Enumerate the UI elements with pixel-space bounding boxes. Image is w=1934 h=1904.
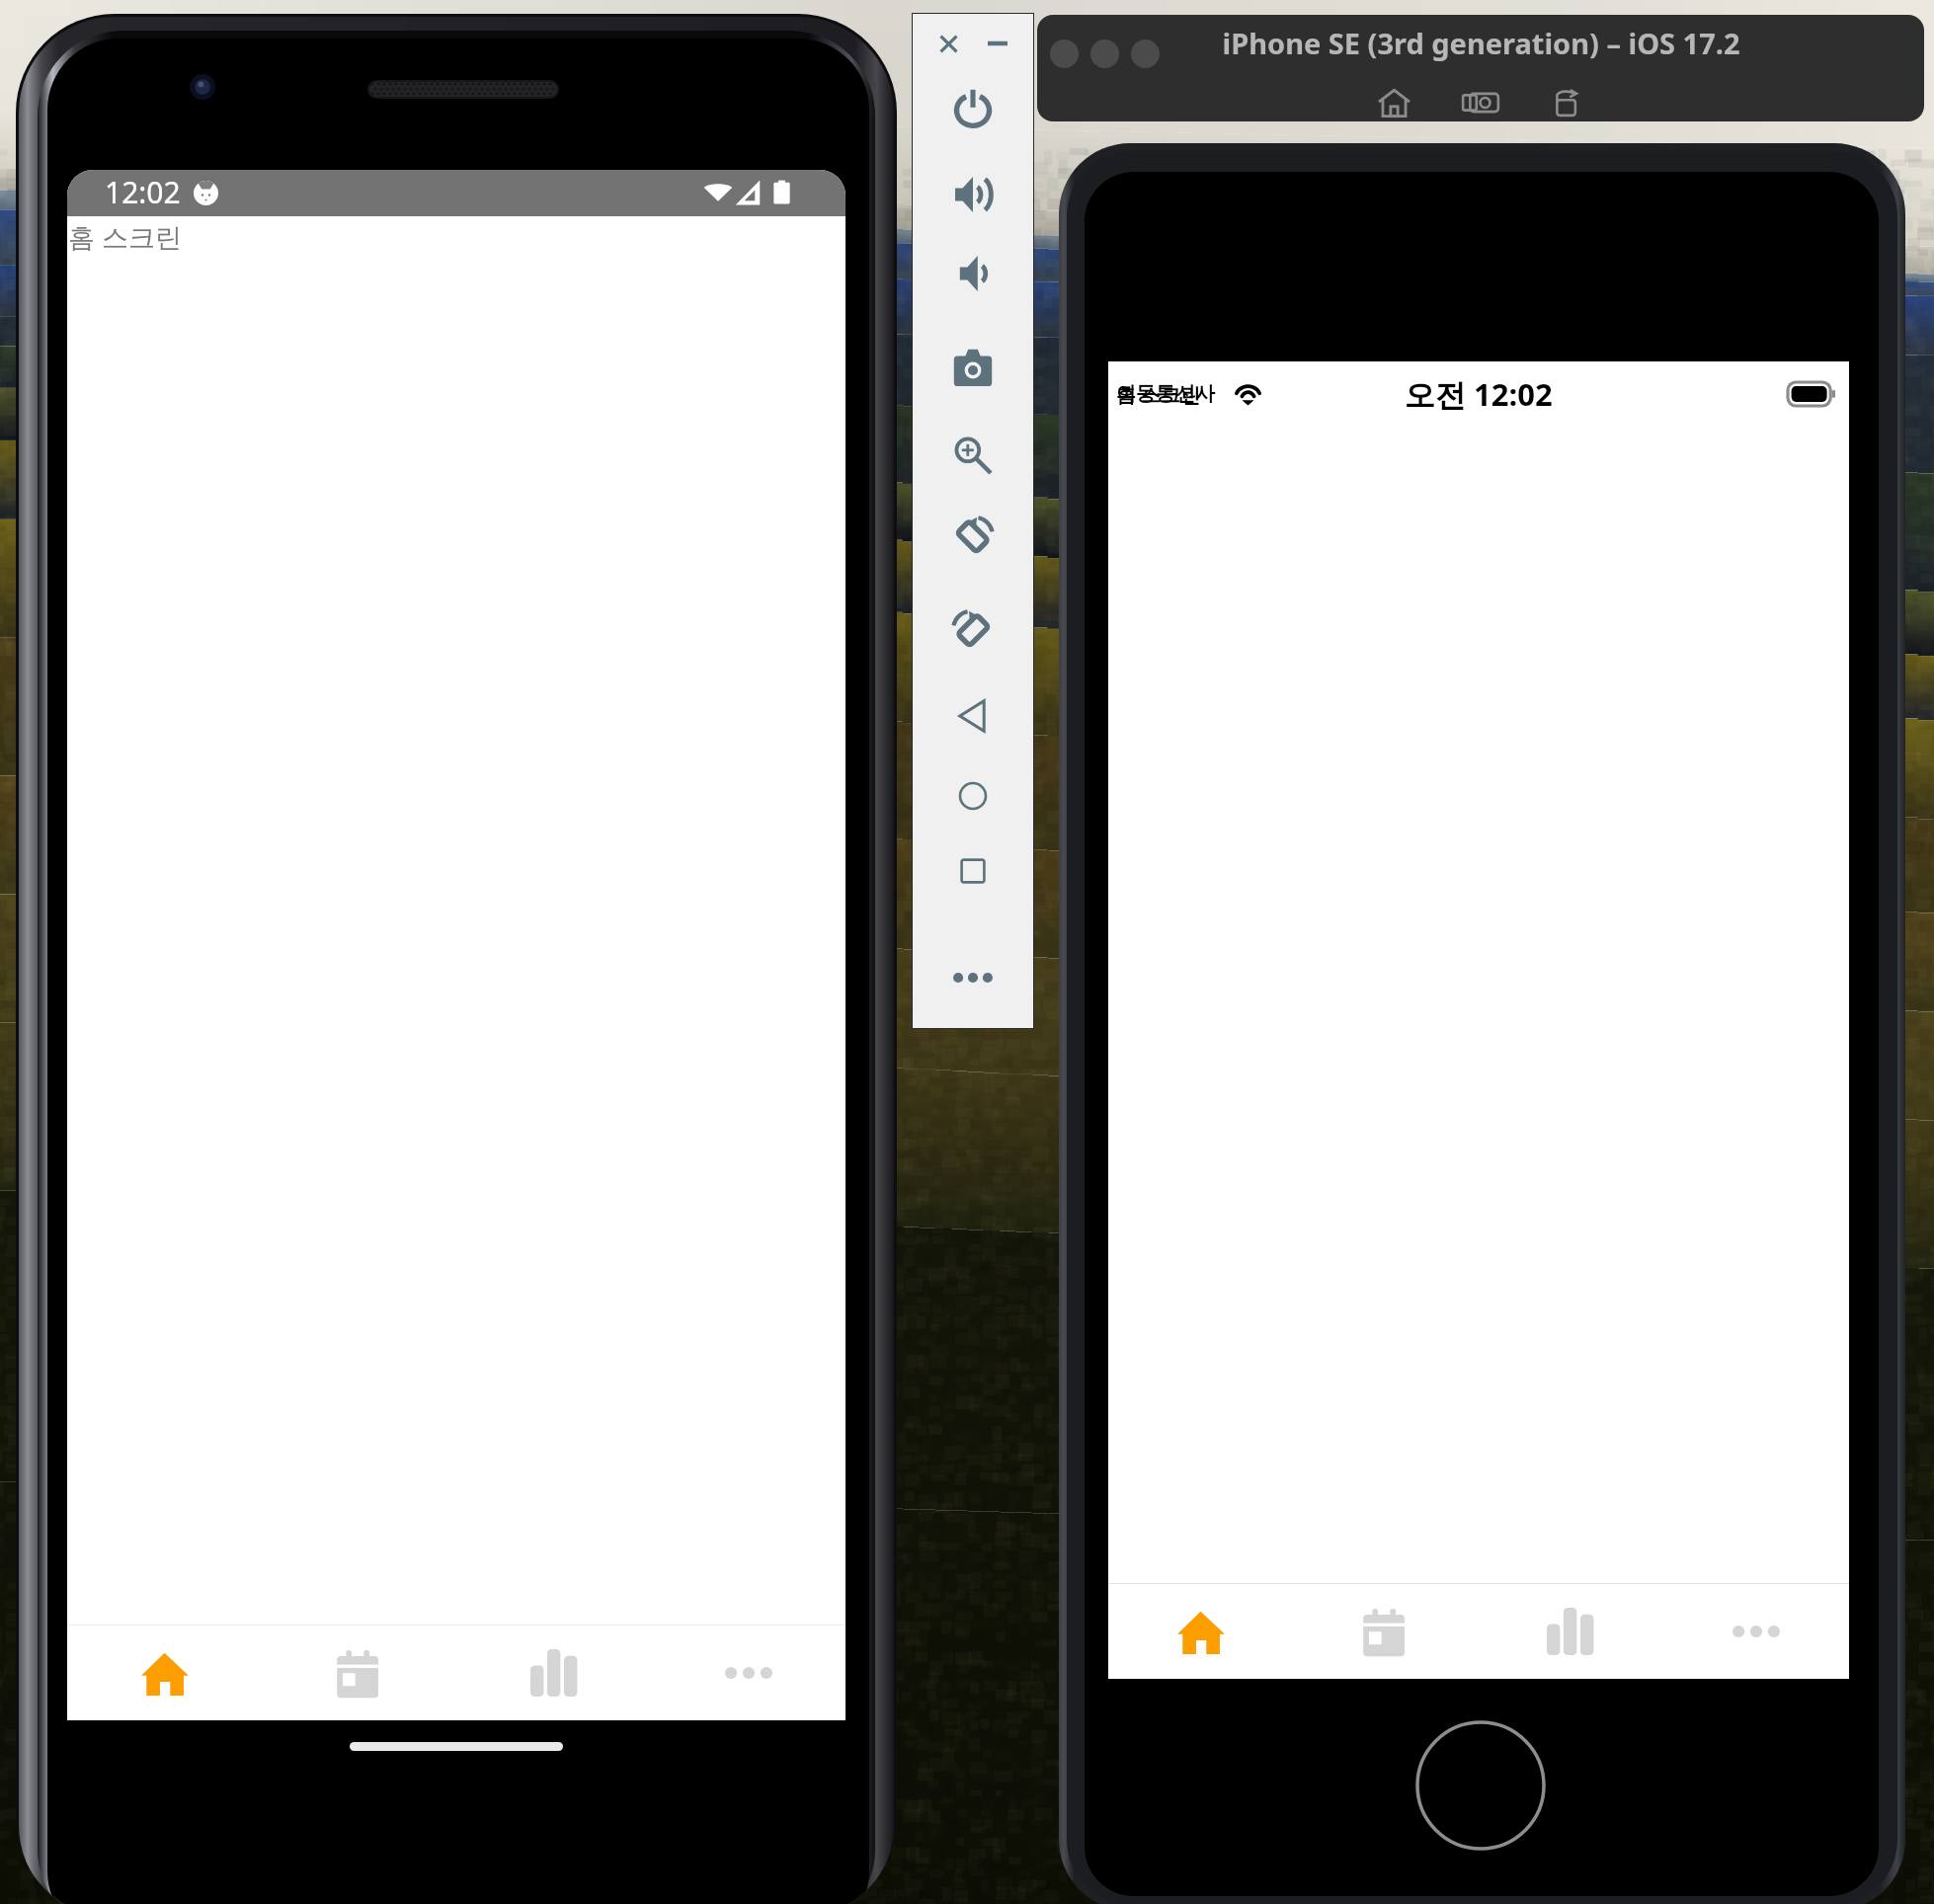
button[interactable]: More — [1663, 1584, 1849, 1679]
staticText: iPhone SE (3rd generation) – iOS 17.2 — [1222, 24, 1740, 62]
button[interactable]: Statistics — [1478, 1584, 1663, 1679]
button[interactable]: Close — [932, 28, 964, 59]
button[interactable]: Calendar — [262, 1626, 456, 1720]
button[interactable]: More — [651, 1626, 846, 1720]
button[interactable]: Rotate left — [943, 507, 1003, 566]
button[interactable]: Window control — [1090, 40, 1119, 68]
button[interactable]: Window control — [1131, 40, 1160, 68]
button[interactable]: More options — [943, 948, 1003, 1007]
button[interactable]: Power — [943, 79, 1003, 138]
button[interactable]: Calendar — [1293, 1584, 1478, 1679]
button[interactable]: Home — [67, 1626, 262, 1720]
staticText: 12:02 — [105, 172, 181, 212]
button[interactable]: Window control — [1050, 40, 1079, 68]
button[interactable]: Overview — [943, 841, 1003, 901]
button[interactable]: Back — [943, 686, 1003, 746]
staticText: 이동통신사 — [1116, 381, 1215, 406]
staticText: 홈 스크린 — [68, 218, 183, 255]
button[interactable]: Volume down — [943, 244, 1003, 303]
button[interactable]: Statistics — [456, 1626, 651, 1720]
button[interactable]: Rotate — [1549, 84, 1586, 121]
button[interactable]: Home — [943, 766, 1003, 826]
button[interactable]: Home button — [1415, 1720, 1546, 1851]
button[interactable]: Screenshot — [943, 337, 1003, 396]
button[interactable]: Zoom — [943, 426, 1003, 485]
staticText: 오전 12:02 — [1405, 373, 1553, 415]
button[interactable]: Minimize — [982, 28, 1013, 59]
button[interactable]: Rotate right — [943, 600, 1003, 660]
button[interactable]: Home — [1108, 1584, 1293, 1679]
button[interactable]: Home — [1375, 84, 1412, 121]
button[interactable]: Screenshot — [1462, 84, 1499, 121]
staticText: 홈 스크린 — [1116, 381, 1201, 408]
button[interactable]: Volume up — [943, 165, 1003, 224]
